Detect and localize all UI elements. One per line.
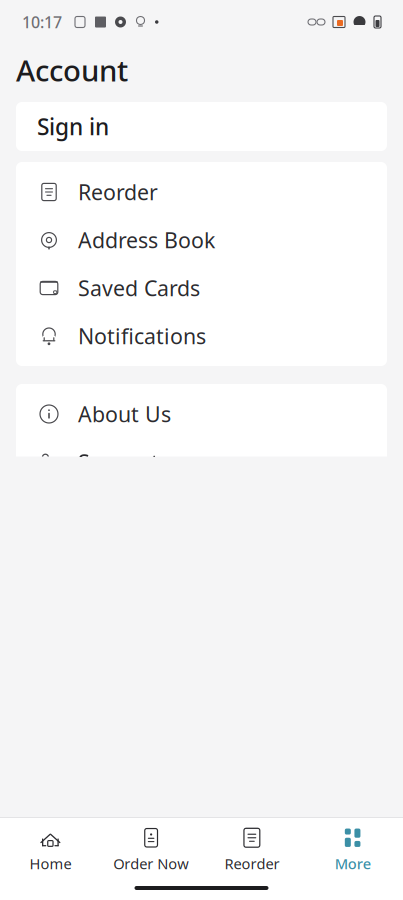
button[interactable]: Notifications [16, 312, 387, 360]
staticText: Support [78, 448, 159, 476]
staticText: Saved Cards [78, 274, 200, 302]
staticText: Address Book [78, 226, 215, 254]
button[interactable]: Reorder [16, 168, 387, 216]
button[interactable]: Support [16, 438, 387, 486]
button[interactable]: Home [0, 824, 101, 876]
staticText: Home [29, 854, 71, 873]
staticText: 10:17 [22, 11, 62, 33]
staticText: More [335, 854, 371, 873]
button[interactable]: More [302, 824, 403, 876]
button[interactable]: Sign in [16, 102, 387, 151]
staticText: Order Now [113, 854, 189, 873]
button[interactable]: Reorder [201, 824, 302, 876]
staticText: Reorder [78, 178, 158, 206]
button[interactable]: About Us [16, 390, 387, 438]
button[interactable]: Order Now [101, 824, 202, 876]
staticText: Account [16, 50, 128, 89]
staticText: About Us [78, 400, 171, 428]
button[interactable]: Address Book [16, 216, 387, 264]
button[interactable]: Saved Cards [16, 264, 387, 312]
staticText: Reorder [224, 854, 279, 873]
staticText: Sign in [37, 111, 109, 141]
staticText: Notifications [78, 322, 206, 350]
